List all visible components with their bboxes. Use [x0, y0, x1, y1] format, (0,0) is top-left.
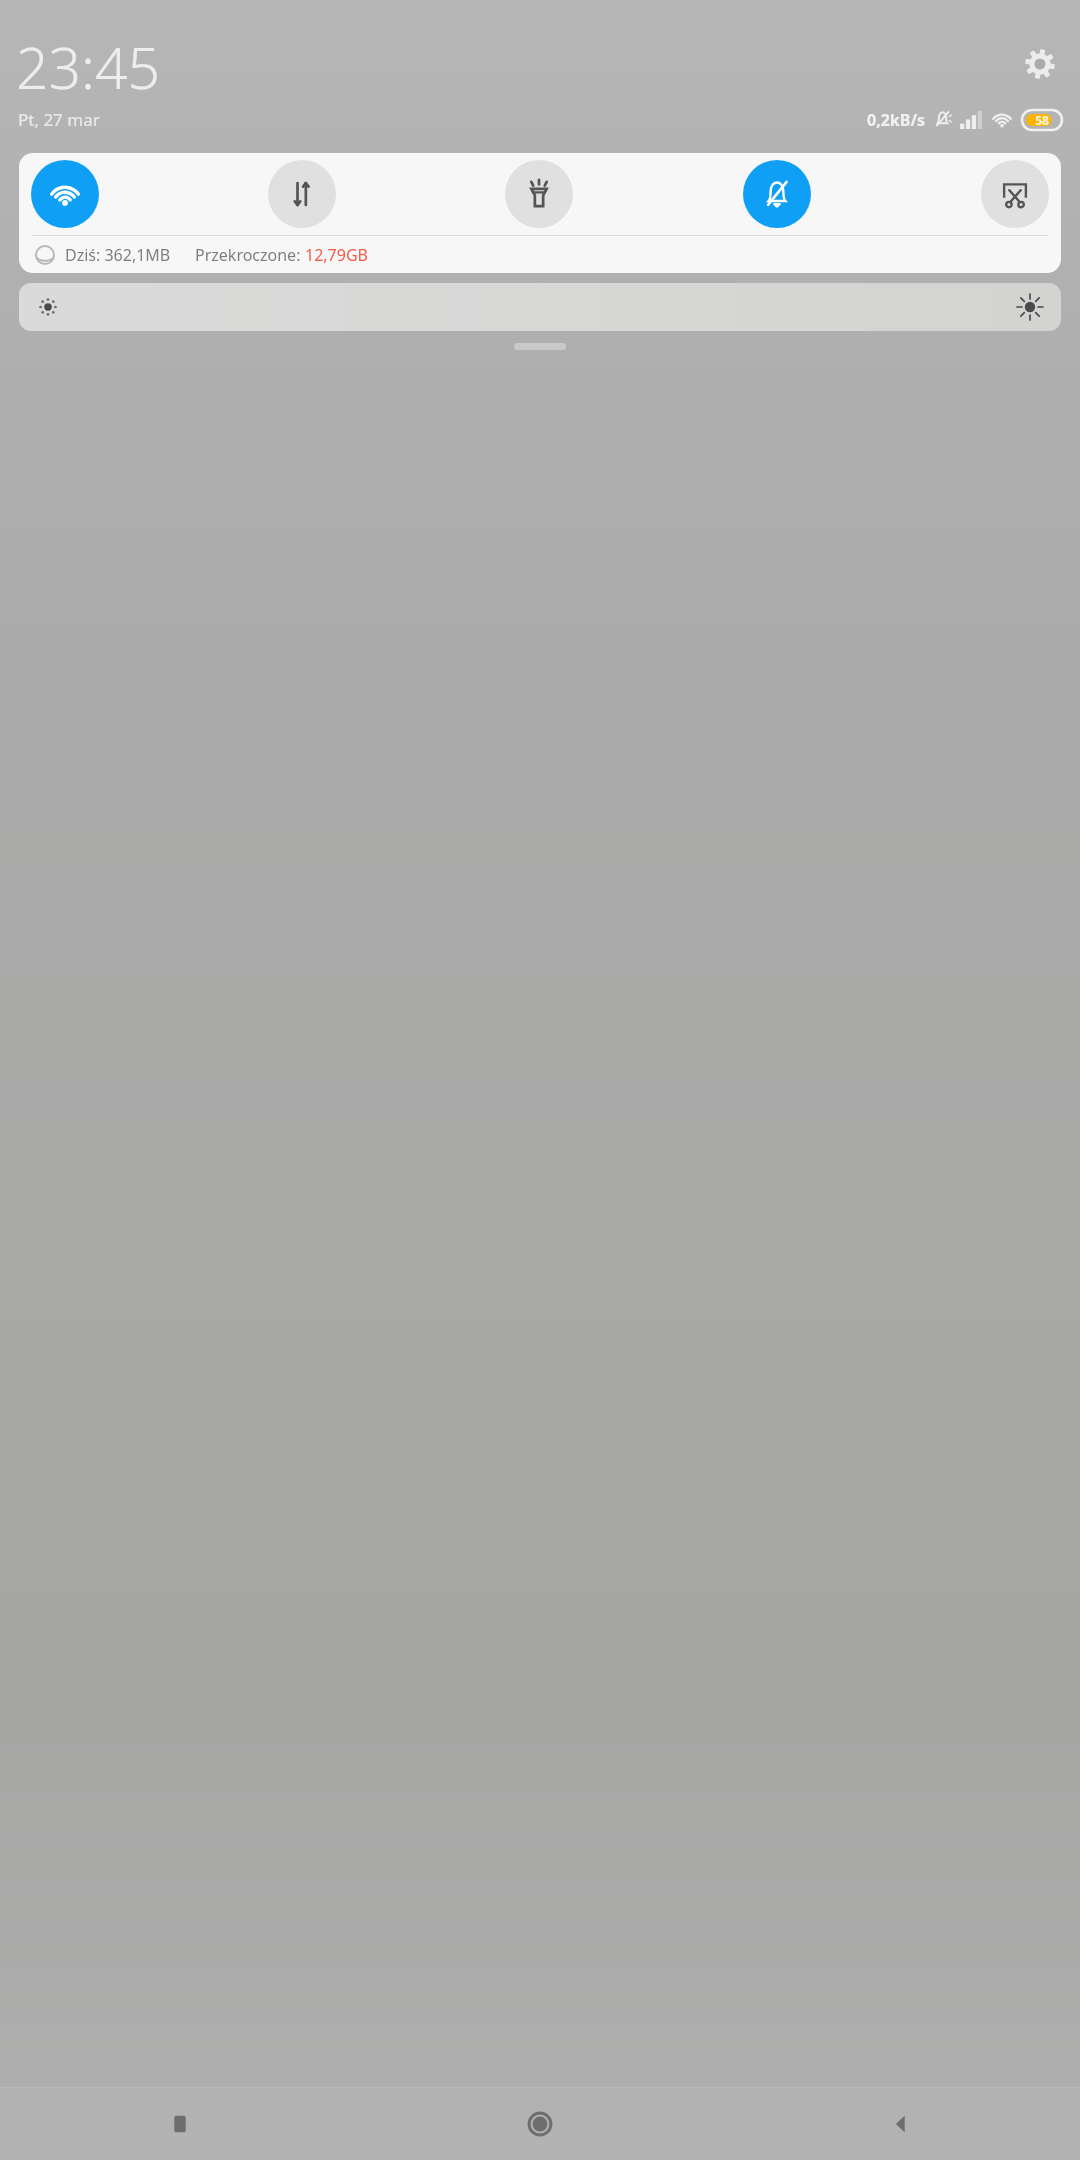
button[interactable]: Settings: [1018, 42, 1062, 86]
staticText: 0,2kB/s: [867, 109, 926, 131]
button[interactable]: Dziś: 362,1MB: [35, 236, 1061, 273]
button[interactable]: Expand: [514, 343, 566, 350]
button[interactable]: Recents: [0, 2088, 360, 2160]
button[interactable]: Wi-Fi: [31, 160, 99, 228]
staticText: Przekroczone:: [195, 244, 305, 266]
staticText: 58: [1035, 112, 1049, 128]
button[interactable]: Screenshot: [981, 160, 1049, 228]
button[interactable]: Home: [360, 2088, 720, 2160]
button[interactable]: Brightness: [19, 283, 1061, 331]
staticText: 12,79GB: [305, 244, 368, 266]
button[interactable]: Mobile data: [268, 160, 336, 228]
staticText: Pt, 27 mar: [18, 108, 100, 131]
button[interactable]: Back: [720, 2088, 1080, 2160]
staticText: Dziś: 362,1MB: [65, 244, 171, 266]
staticText: 23:45: [16, 28, 161, 106]
button[interactable]: Silent mode: [743, 160, 811, 228]
button[interactable]: Flashlight: [505, 160, 573, 228]
